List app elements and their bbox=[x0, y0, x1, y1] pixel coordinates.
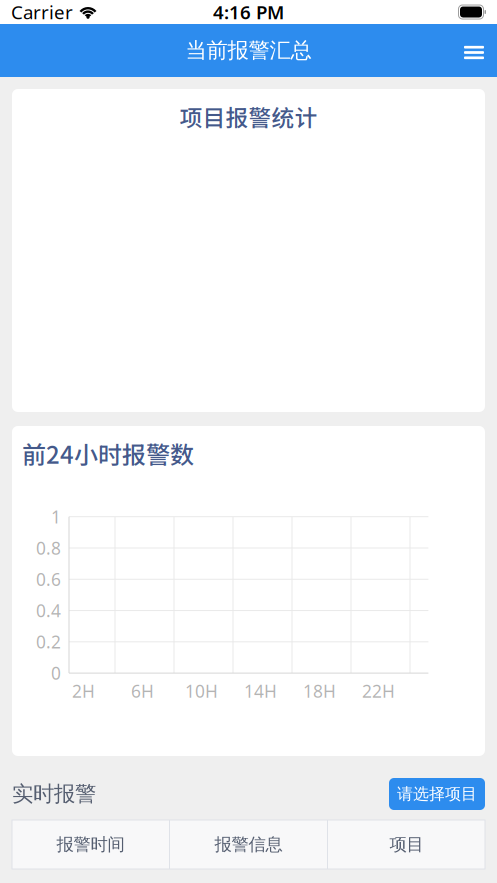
staticText: 请选择项目 bbox=[397, 784, 477, 804]
staticText: 2H bbox=[72, 680, 95, 703]
staticText: 22H bbox=[362, 680, 395, 703]
staticText: 报警信息 bbox=[214, 834, 282, 855]
staticText: Carrier bbox=[11, 0, 73, 24]
staticText: 前24小时报警数 bbox=[22, 436, 194, 471]
staticText: 14H bbox=[244, 680, 277, 703]
staticText: 6H bbox=[131, 680, 154, 703]
staticText: 18H bbox=[303, 680, 336, 703]
staticText: 4:16 PM bbox=[213, 0, 284, 24]
staticText: 0.6 bbox=[36, 568, 61, 591]
staticText: 项目报警统计 bbox=[179, 100, 317, 133]
staticText: 10H bbox=[185, 680, 218, 703]
staticText: 1 bbox=[51, 505, 61, 528]
staticText: 0.2 bbox=[36, 630, 61, 653]
staticText: 报警时间 bbox=[56, 834, 124, 855]
staticText: 0.8 bbox=[36, 536, 61, 559]
staticText: 实时报警 bbox=[12, 781, 96, 807]
button[interactable]: 请选择项目 bbox=[389, 778, 485, 810]
staticText: 当前报警汇总 bbox=[185, 37, 311, 64]
button[interactable]: Menu bbox=[450, 22, 497, 79]
staticText: 0.4 bbox=[36, 599, 61, 622]
staticText: 项目 bbox=[389, 834, 423, 855]
staticText: 0 bbox=[51, 662, 61, 685]
